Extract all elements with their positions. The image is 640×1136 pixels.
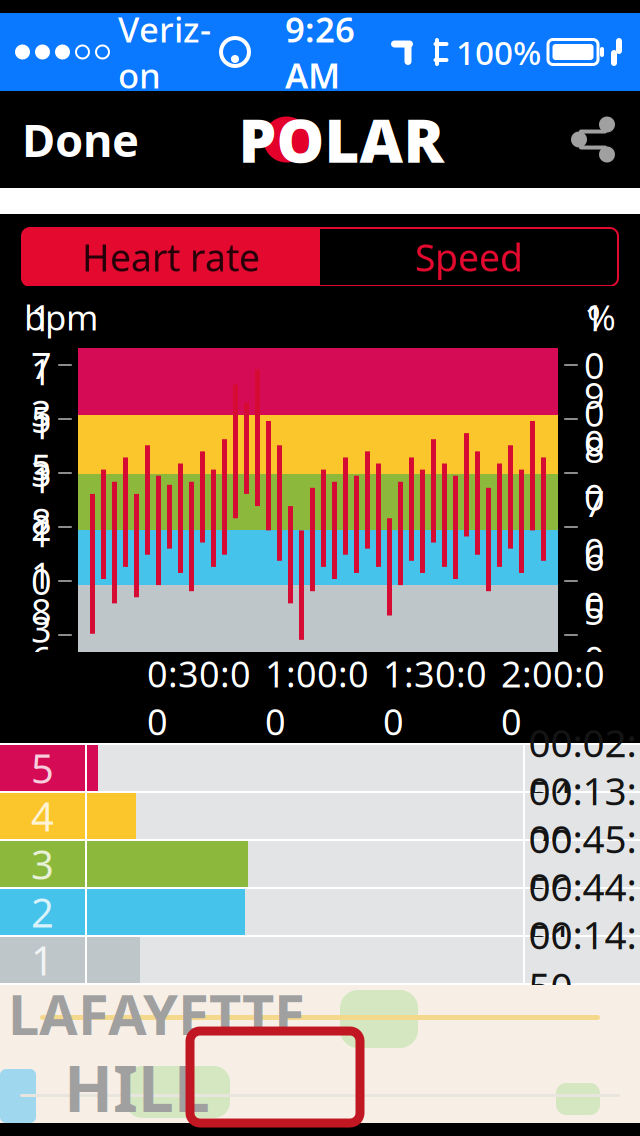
staticText: 50 <box>584 587 605 683</box>
staticText: 4 <box>31 789 54 842</box>
staticText: 100% <box>456 30 541 74</box>
staticText: 00:45:56 <box>528 813 636 915</box>
staticText: Done <box>22 109 139 170</box>
staticText: Speed <box>415 232 523 282</box>
staticText: Heart rate <box>82 232 260 282</box>
staticText: 121 <box>31 455 52 599</box>
staticText: 90 <box>584 371 605 467</box>
staticText: 60 <box>584 533 605 629</box>
staticText: 155 <box>31 347 52 491</box>
staticText: 100 <box>584 293 605 437</box>
staticText: 2 <box>31 885 54 938</box>
button[interactable]: Heart rate <box>22 228 320 286</box>
staticText: 1:00:00 <box>265 650 369 745</box>
staticText: 5 <box>31 741 54 794</box>
button[interactable]: 5 <box>0 745 640 791</box>
staticText: bpm <box>24 294 98 340</box>
staticText: 1 <box>31 933 54 986</box>
staticText: POLAR <box>238 100 444 179</box>
staticText: 173 <box>31 293 52 437</box>
staticText: 00:02:54 <box>528 717 636 819</box>
button[interactable]: Done <box>0 87 161 192</box>
staticText: 3 <box>31 837 54 890</box>
staticText: 0:30:00 <box>147 650 251 745</box>
button[interactable]: 4 <box>0 793 640 839</box>
staticText: Verizon <box>118 6 211 98</box>
staticText: 9:26 AM <box>285 6 355 98</box>
staticText: 00:13:20 <box>528 765 636 867</box>
staticText: 00:14:50 <box>528 909 636 1011</box>
staticText: 1:30:00 <box>383 650 487 745</box>
staticText: HILL <box>64 1045 210 1130</box>
button[interactable]: Speed <box>320 228 618 286</box>
button[interactable]: 2 <box>0 889 640 935</box>
staticText: 103 <box>31 509 52 653</box>
staticText: 2:00:00 <box>501 650 605 745</box>
staticText: 70 <box>584 479 605 575</box>
staticText: 138 <box>31 401 52 545</box>
button[interactable]: Share <box>546 94 640 184</box>
button[interactable]: 3 <box>0 841 640 887</box>
staticText: % <box>587 294 616 340</box>
staticText: LAFAYETTE <box>8 976 305 1051</box>
staticText: 80 <box>584 425 605 521</box>
staticText: 86 <box>31 587 52 683</box>
button[interactable]: 1 <box>0 937 640 983</box>
staticText: 00:44:51 <box>528 861 636 963</box>
